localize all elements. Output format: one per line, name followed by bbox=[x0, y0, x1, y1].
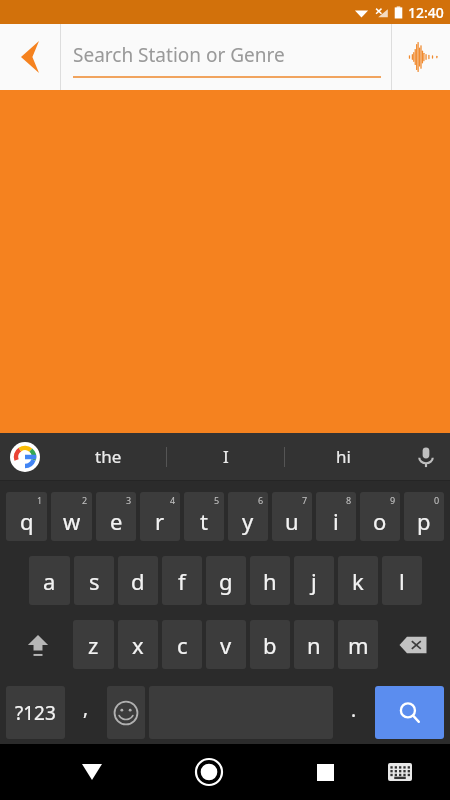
staticText: 5 bbox=[214, 494, 220, 506]
button[interactable]: Search bbox=[375, 686, 444, 739]
button[interactable]: the bbox=[50, 433, 166, 480]
button[interactable]: x bbox=[118, 620, 158, 669]
button[interactable]: 6 bbox=[228, 492, 268, 541]
button[interactable]: Period bbox=[337, 686, 371, 739]
button[interactable]: k bbox=[338, 556, 378, 605]
staticText: 12:40 bbox=[408, 3, 444, 22]
button[interactable]: Shift bbox=[6, 622, 69, 667]
staticText: ?123 bbox=[15, 700, 56, 726]
button[interactable]: h bbox=[250, 556, 290, 605]
staticText: y bbox=[242, 506, 254, 536]
button[interactable]: Recents bbox=[300, 744, 351, 800]
staticText: 8 bbox=[346, 494, 352, 506]
button[interactable]: n bbox=[294, 620, 334, 669]
staticText: e bbox=[110, 506, 123, 536]
button[interactable]: j bbox=[294, 556, 334, 605]
staticText: . bbox=[351, 697, 357, 723]
staticText: I bbox=[223, 445, 229, 468]
staticText: l bbox=[399, 566, 405, 596]
staticText: g bbox=[219, 566, 233, 596]
button[interactable]: Google bbox=[0, 433, 50, 480]
staticText: d bbox=[131, 566, 145, 596]
button[interactable]: g bbox=[206, 556, 246, 605]
button[interactable]: v bbox=[206, 620, 246, 669]
button[interactable]: 0 bbox=[404, 492, 444, 541]
button[interactable]: l bbox=[382, 556, 422, 605]
button[interactable]: 2 bbox=[51, 492, 92, 541]
staticText: i bbox=[333, 506, 339, 536]
button[interactable]: 8 bbox=[316, 492, 356, 541]
staticText: v bbox=[220, 630, 232, 660]
button[interactable]: b bbox=[250, 620, 290, 669]
button[interactable]: Home bbox=[183, 744, 234, 800]
button[interactable]: 4 bbox=[140, 492, 180, 541]
button[interactable]: Emoji bbox=[107, 686, 145, 739]
staticText: 6 bbox=[258, 494, 264, 506]
button[interactable]: Voice search bbox=[392, 24, 450, 90]
button[interactable]: Search Station or Genre bbox=[61, 24, 391, 90]
staticText: Search Station or Genre bbox=[73, 42, 285, 68]
button[interactable]: hi bbox=[285, 433, 402, 480]
staticText: 3 bbox=[126, 494, 132, 506]
button[interactable]: I bbox=[167, 433, 284, 480]
staticText: 1 bbox=[37, 494, 43, 506]
staticText: x bbox=[132, 630, 144, 660]
button[interactable]: 7 bbox=[272, 492, 312, 541]
staticText: 2 bbox=[82, 494, 88, 506]
staticText: t bbox=[200, 506, 208, 536]
button[interactable]: Back bbox=[67, 744, 117, 800]
button[interactable]: m bbox=[338, 620, 378, 669]
staticText: u bbox=[285, 506, 299, 536]
button[interactable]: 1 bbox=[6, 492, 47, 541]
staticText: a bbox=[43, 566, 56, 596]
staticText: z bbox=[88, 630, 99, 660]
button[interactable]: z bbox=[73, 620, 114, 669]
staticText: 0 bbox=[434, 494, 440, 506]
button[interactable]: 9 bbox=[360, 492, 400, 541]
button[interactable]: Comma bbox=[69, 686, 103, 739]
button[interactable]: Back bbox=[0, 24, 60, 90]
button[interactable]: s bbox=[74, 556, 114, 605]
staticText: 4 bbox=[170, 494, 176, 506]
button[interactable]: Switch keyboard bbox=[374, 744, 425, 800]
staticText: h bbox=[263, 566, 277, 596]
button[interactable]: 3 bbox=[96, 492, 136, 541]
button[interactable]: ?123 bbox=[6, 686, 65, 739]
button[interactable]: Backspace bbox=[382, 622, 444, 667]
staticText: r bbox=[155, 506, 165, 536]
staticText: 9 bbox=[390, 494, 396, 506]
button[interactable]: 5 bbox=[184, 492, 224, 541]
staticText: w bbox=[63, 506, 81, 536]
button[interactable]: c bbox=[162, 620, 202, 669]
staticText: q bbox=[20, 506, 34, 536]
staticText: f bbox=[178, 566, 186, 596]
button[interactable]: f bbox=[162, 556, 202, 605]
staticText: m bbox=[348, 630, 369, 660]
staticText: o bbox=[373, 506, 387, 536]
staticText: 7 bbox=[302, 494, 308, 506]
staticText: j bbox=[311, 566, 317, 596]
staticText: hi bbox=[336, 445, 351, 468]
staticText: c bbox=[177, 630, 188, 660]
staticText: p bbox=[417, 506, 431, 536]
staticText: s bbox=[89, 566, 100, 596]
button[interactable]: d bbox=[118, 556, 158, 605]
staticText: , bbox=[83, 695, 89, 721]
staticText: k bbox=[352, 566, 364, 596]
staticText: b bbox=[263, 630, 277, 660]
button[interactable]: a bbox=[29, 556, 70, 605]
staticText: the bbox=[95, 445, 122, 468]
button[interactable]: Voice input bbox=[402, 433, 450, 480]
staticText: n bbox=[307, 630, 321, 660]
